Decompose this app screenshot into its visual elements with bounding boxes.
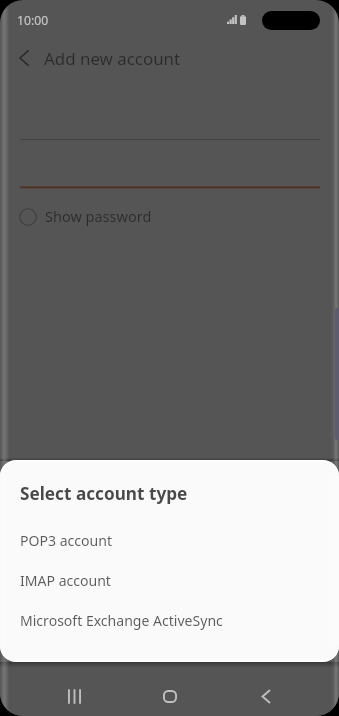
button[interactable]: Recent apps (27, 663, 122, 716)
button[interactable]: Microsoft Exchange ActiveSync (0, 600, 339, 640)
staticText: Select account type (20, 482, 188, 505)
button[interactable]: Back (218, 663, 314, 716)
staticText: POP3 account (20, 531, 112, 550)
staticText: 10:00 (17, 12, 49, 29)
staticText: Add new account (44, 47, 181, 70)
button[interactable]: Show password (0, 203, 339, 231)
button[interactable]: Home (122, 663, 218, 716)
staticText: IMAP account (20, 571, 111, 590)
button[interactable]: Navigate up (4, 38, 44, 78)
button[interactable]: POP3 account (0, 520, 339, 560)
button[interactable]: IMAP account (0, 560, 339, 600)
staticText: Show password (45, 206, 152, 226)
staticText: Microsoft Exchange ActiveSync (20, 611, 223, 630)
